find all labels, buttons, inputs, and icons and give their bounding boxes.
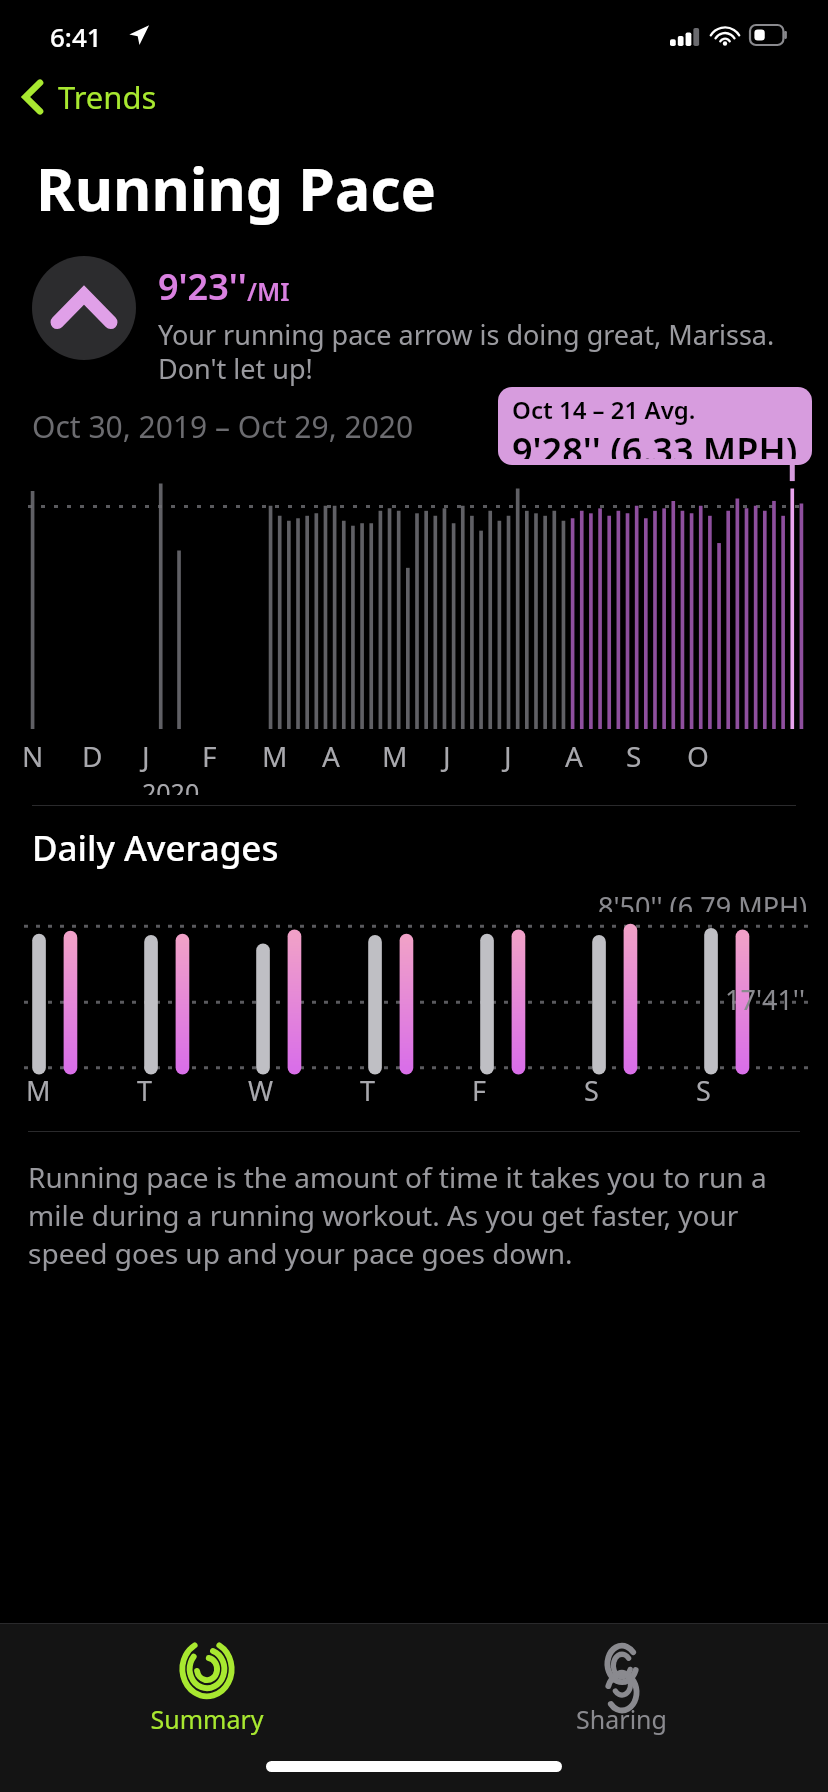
staticText: Running pace is the amount of time it ta… (28, 1158, 788, 1272)
staticText: D (82, 737, 103, 775)
staticText: A (565, 737, 583, 775)
staticText: W (248, 1072, 274, 1109)
button[interactable] (0, 465, 828, 733)
staticText: S (696, 1072, 711, 1109)
staticText: S (626, 737, 642, 775)
staticText: 8'50'' (6.79 MPH) (598, 888, 808, 912)
button[interactable]: Summary (120, 1624, 294, 1746)
button[interactable] (0, 918, 828, 1070)
staticText: 9'28'' (6.33 MPH) (512, 426, 798, 459)
staticText: Daily Averages (32, 824, 279, 872)
staticText: 9'23'' (158, 262, 247, 311)
staticText: Running Pace (36, 148, 437, 228)
other: Sharing (594, 1638, 650, 1700)
staticText: Summary (150, 1702, 264, 1736)
staticText: F (202, 737, 217, 775)
staticText: Oct 14 – 21 Avg. (512, 393, 696, 426)
staticText: Your running pace arrow is doing great, … (158, 316, 800, 387)
staticText: O (687, 737, 709, 775)
staticText: J (142, 737, 150, 775)
button[interactable]: Oct 14 – 21 Avg. (498, 387, 812, 465)
staticText: S (584, 1072, 599, 1109)
button[interactable]: Trends (0, 66, 828, 128)
staticText: N (22, 737, 44, 775)
staticText: /MI (247, 274, 290, 308)
staticText: A (322, 737, 340, 775)
staticText: 6:41 (50, 19, 102, 54)
staticText: J (443, 737, 451, 775)
staticText: Oct 30, 2019 – Oct 29, 2020 (32, 406, 414, 447)
staticText: M (26, 1072, 51, 1109)
button[interactable]: Sharing (546, 1624, 697, 1746)
staticText: F (472, 1072, 487, 1109)
staticText: M (262, 737, 288, 775)
other: Summary (179, 1638, 235, 1700)
staticText: M (382, 737, 408, 775)
staticText: Sharing (576, 1702, 667, 1736)
staticText: T (137, 1072, 153, 1109)
staticText: 17'41'' (725, 981, 806, 1018)
staticText: J (504, 737, 512, 775)
staticText: T (360, 1072, 376, 1109)
staticText: Trends (58, 76, 157, 118)
staticText: 2020 (142, 775, 200, 795)
